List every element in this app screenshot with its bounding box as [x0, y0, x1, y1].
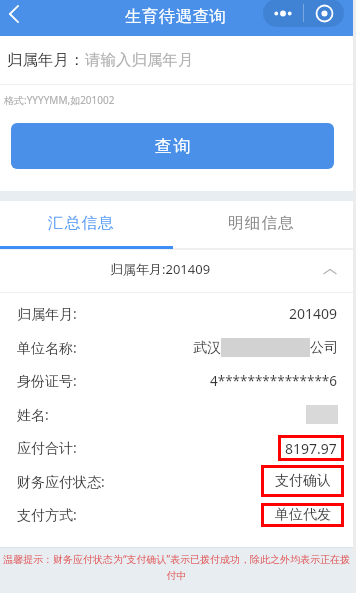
button[interactable]: 归属年月:: [17, 297, 338, 330]
other: Collapse: [322, 264, 338, 280]
button[interactable]: Back: [0, 0, 28, 27]
staticText: 归属年月:201409: [110, 260, 211, 278]
button[interactable]: 单位名称:: [17, 330, 338, 364]
button[interactable]: 明细信息: [173, 201, 353, 247]
staticText: 生育待遇查询: [125, 6, 227, 27]
staticText: 身份证号:: [17, 371, 77, 390]
staticText: 请输入归属年月: [85, 50, 194, 70]
staticText: 201409: [289, 304, 338, 323]
button[interactable]: 查询: [11, 123, 334, 169]
staticText: 归属年月:: [17, 304, 77, 323]
button[interactable]: 汇总信息: [0, 201, 173, 247]
button[interactable]: 财务应付状态:: [17, 464, 338, 498]
staticText: 汇总信息: [48, 213, 115, 233]
button[interactable]: 支付方式:: [17, 498, 338, 531]
staticText: 单位名称:: [17, 338, 77, 357]
staticText: 支付确认: [275, 472, 331, 490]
staticText: 4***************6: [210, 372, 338, 390]
button[interactable]: 应付合计:: [17, 431, 338, 464]
staticText: 温馨提示：财务应付状态为“支付确认”表示已拨付成功，除此之外均表示正在拨付中: [0, 552, 353, 582]
staticText: 财务应付状态:: [17, 472, 105, 491]
staticText: 查询: [154, 136, 191, 157]
staticText: 姓名:: [17, 405, 49, 424]
staticText: 支付方式:: [17, 505, 77, 524]
button[interactable]: 身份证号:: [17, 364, 338, 397]
button[interactable]: 归属年月:201409: [0, 251, 353, 292]
staticText: 公司: [310, 339, 338, 357]
button[interactable]: 归属年月：: [7, 36, 353, 84]
staticText: 应付合计:: [17, 438, 77, 457]
button[interactable]: 姓名:: [17, 397, 338, 431]
staticText: 单位代发: [275, 506, 331, 524]
staticText: 格式:YYYYMM,如201002: [4, 93, 115, 107]
button[interactable]: More options: [263, 0, 344, 27]
staticText: 武汉: [193, 339, 221, 357]
staticText: 归属年月：: [7, 50, 85, 70]
staticText: 明细信息: [228, 213, 295, 233]
staticText: 8197.97: [285, 439, 337, 458]
